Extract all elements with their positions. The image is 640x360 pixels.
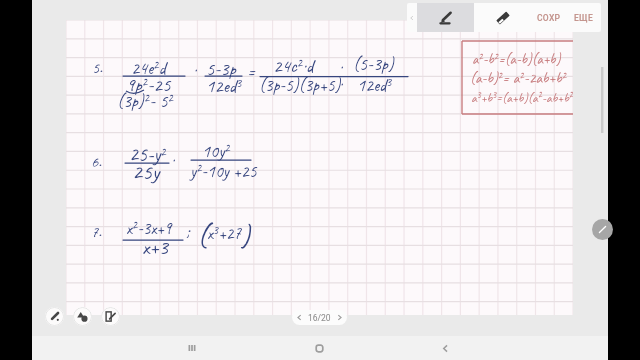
staticText: (3p-5)(3p+5)	[259, 74, 341, 96]
button[interactable]: Next page	[332, 310, 347, 325]
staticText: )	[240, 216, 250, 254]
button[interactable]: ЕЩЕ	[566, 3, 601, 32]
staticText: ЕЩЕ	[574, 13, 593, 23]
button[interactable]: Home	[299, 336, 339, 360]
staticText: x2-3x+9	[126, 217, 172, 239]
staticText: 5-3p	[206, 57, 236, 80]
staticText: ·	[339, 57, 343, 78]
button[interactable]: Pen settings	[45, 307, 64, 326]
staticText: 24e2d	[131, 57, 166, 80]
staticText: a3+b3=(a+b)(a2-ab+b2)	[471, 89, 573, 105]
staticText: 10y2	[202, 140, 230, 163]
staticText: 7.	[91, 222, 102, 242]
staticText: x+3	[142, 234, 169, 260]
staticText: 12ed3	[357, 74, 392, 97]
staticText: a2-b2=(a-b)(a+b)	[472, 50, 561, 68]
staticText: 9p2-25	[126, 73, 171, 97]
button[interactable]: Collapse toolbar	[407, 3, 417, 32]
staticText: ·	[339, 74, 343, 95]
button[interactable]: Previous page	[292, 310, 307, 325]
staticText: 16/20	[308, 313, 331, 323]
staticText: (3p)2- 52	[117, 90, 173, 113]
button[interactable]: СОХР	[531, 3, 566, 32]
staticText: 12ed3	[206, 74, 242, 97]
staticText: ·	[171, 150, 175, 171]
staticText: y2-10y +25	[190, 160, 257, 182]
button[interactable]: Back	[425, 336, 465, 360]
staticText: 25-y2	[129, 142, 166, 167]
staticText: СОХР	[537, 13, 561, 23]
button[interactable]: Recents	[172, 336, 212, 360]
staticText: 25y	[132, 158, 160, 186]
staticText: 24c2·d	[273, 54, 314, 78]
staticText: 6.	[91, 152, 102, 172]
button[interactable]: Add note	[101, 307, 120, 326]
staticText: (a-b)2= a2-2ab+b2	[470, 69, 567, 88]
staticText: 5.	[92, 58, 103, 78]
staticText: x3+27	[207, 222, 242, 244]
button[interactable]: Pen tool	[417, 3, 474, 32]
staticText: ·	[193, 60, 197, 81]
button[interactable]: Edit	[592, 219, 613, 240]
button[interactable]: Shapes	[73, 307, 92, 326]
button[interactable]: Eraser tool	[474, 3, 531, 32]
staticText: ;	[186, 221, 190, 242]
staticText: (	[197, 216, 207, 254]
staticText: =	[247, 61, 256, 84]
staticText: (5-3p)	[353, 53, 394, 76]
